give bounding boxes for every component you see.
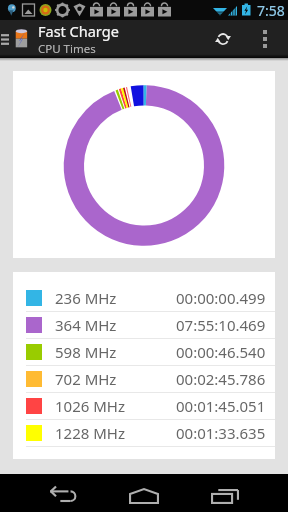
button[interactable]: 702 MHz (13, 366, 275, 393)
staticText: Fast Charge (38, 21, 119, 41)
staticText: 00:02:45.786 (176, 369, 266, 389)
button[interactable]: 1026 MHz (13, 393, 275, 420)
button[interactable]: 598 MHz (13, 339, 275, 366)
staticText: CPU Times (38, 41, 96, 57)
staticText: 7:58 (257, 1, 285, 20)
button[interactable]: 1228 MHz (13, 420, 275, 447)
staticText: 00:00:00.499 (176, 288, 266, 308)
staticText: 00:01:33.635 (176, 423, 266, 443)
staticText: 00:01:45.051 (176, 396, 266, 416)
staticText: 598 MHz (55, 342, 117, 362)
button[interactable]: Home (114, 474, 174, 512)
button[interactable]: 364 MHz (13, 312, 275, 339)
staticText: 236 MHz (55, 288, 117, 308)
button[interactable]: Back (49, 474, 129, 512)
button[interactable]: 236 MHz (13, 285, 275, 312)
button[interactable]: More options (248, 20, 282, 58)
staticText: 1228 MHz (55, 423, 125, 443)
staticText: 07:55:10.469 (176, 315, 266, 335)
button[interactable]: Refresh (198, 20, 248, 58)
staticText: 1026 MHz (55, 396, 125, 416)
button[interactable]: Recent apps (195, 474, 255, 512)
staticText: 00:00:46.540 (176, 342, 266, 362)
staticText: 702 MHz (55, 369, 117, 389)
staticText: 364 MHz (55, 315, 117, 335)
